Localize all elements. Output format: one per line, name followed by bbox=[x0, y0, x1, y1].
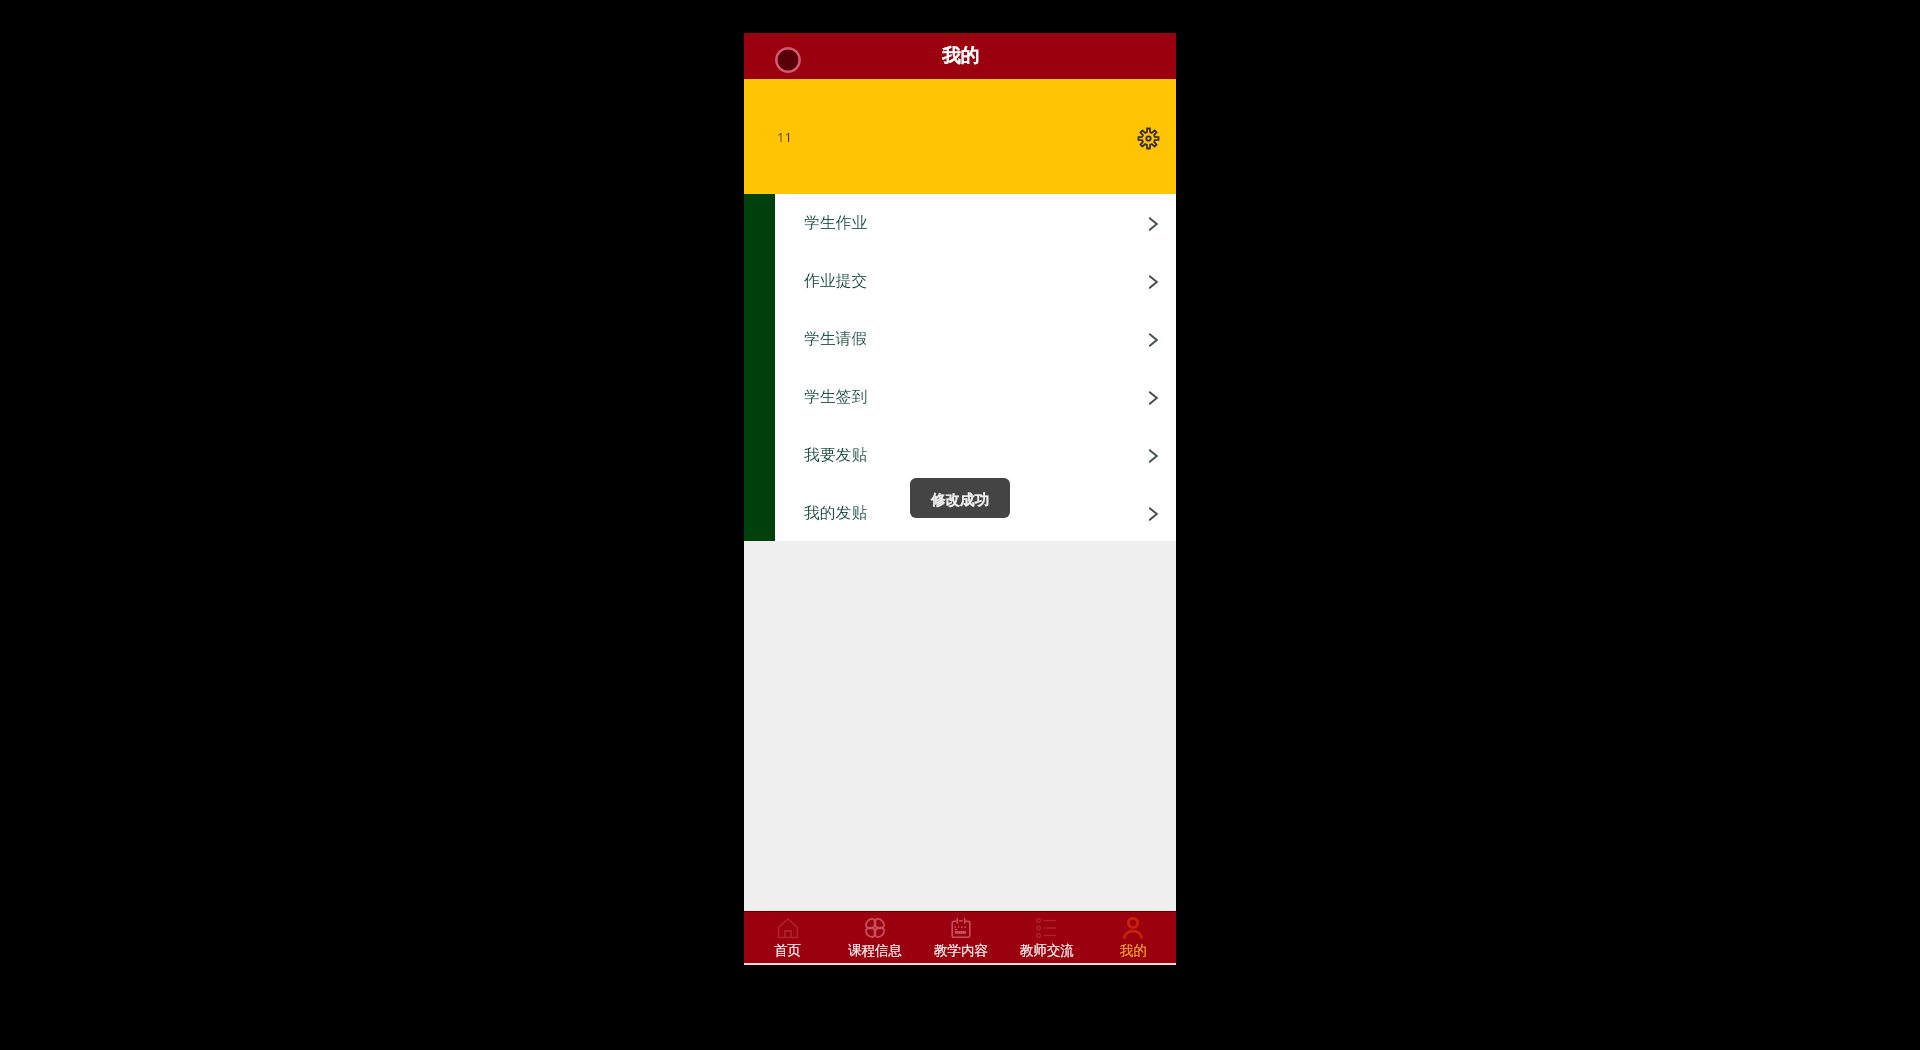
button[interactable]: 作业提交 bbox=[775, 252, 1176, 310]
button[interactable]: 我的 bbox=[1090, 912, 1176, 963]
staticText: 作业提交 bbox=[804, 271, 868, 291]
staticText: 教师交流 bbox=[1020, 942, 1074, 959]
staticText: 课程信息 bbox=[848, 942, 902, 959]
button[interactable]: 课程信息 bbox=[831, 912, 918, 963]
staticText: 11 bbox=[777, 128, 792, 146]
button[interactable]: 学生签到 bbox=[775, 368, 1176, 426]
button[interactable]: 我要发贴 bbox=[775, 426, 1176, 484]
staticText: 学生签到 bbox=[804, 387, 868, 407]
button[interactable]: 教师交流 bbox=[1004, 912, 1090, 963]
button[interactable]: 首页 bbox=[744, 912, 831, 963]
staticText: 首页 bbox=[774, 942, 801, 959]
staticText: 学生作业 bbox=[804, 213, 868, 233]
staticText: 修改成功 bbox=[931, 491, 989, 509]
button[interactable]: 学生作业 bbox=[775, 194, 1176, 252]
button[interactable]: 我的发贴 bbox=[775, 484, 1176, 541]
staticText: 教学内容 bbox=[934, 942, 988, 959]
button[interactable]: Settings bbox=[1132, 122, 1164, 154]
staticText: 我要发贴 bbox=[804, 445, 868, 465]
staticText: 我的发贴 bbox=[804, 503, 868, 523]
staticText: 我的 bbox=[942, 44, 979, 67]
button[interactable]: 教学内容 bbox=[918, 912, 1004, 963]
button[interactable]: 学生请假 bbox=[775, 310, 1176, 368]
button[interactable]: Profile avatar bbox=[773, 45, 803, 75]
staticText: 学生请假 bbox=[804, 329, 868, 349]
staticText: 我的 bbox=[1120, 942, 1147, 959]
